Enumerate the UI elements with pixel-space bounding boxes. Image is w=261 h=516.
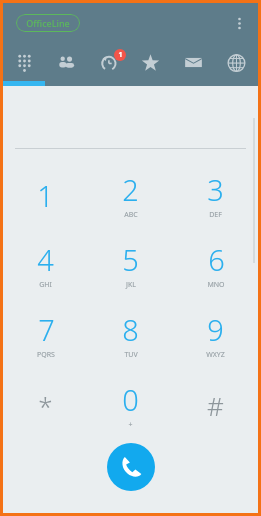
staticText: DEF [209, 210, 222, 220]
staticText: GHI [39, 280, 52, 290]
staticText: 0 [122, 380, 139, 419]
button[interactable]: Contacts [45, 43, 87, 81]
staticText: 6 [208, 240, 225, 279]
button[interactable]: 6 [173, 230, 258, 300]
staticText: OfficeLine [26, 17, 70, 29]
staticText: WXYZ [206, 350, 225, 360]
staticText: 1 [37, 176, 54, 215]
button[interactable]: 8 [88, 300, 173, 370]
button[interactable]: Dialpad [3, 43, 45, 81]
button[interactable]: Call [107, 443, 155, 491]
button[interactable]: 7 [3, 300, 88, 370]
staticText: TUV [124, 350, 138, 360]
button[interactable]: 2 [88, 160, 173, 230]
button[interactable]: OfficeLine [16, 14, 80, 32]
button[interactable]: Web [215, 43, 258, 81]
button[interactable]: 1 [3, 160, 88, 230]
staticText: # [207, 388, 224, 423]
staticText: ABC [124, 210, 138, 220]
staticText: 7 [38, 310, 55, 349]
staticText: 9 [207, 310, 224, 349]
staticText: + [128, 420, 133, 430]
staticText: 1 [118, 50, 123, 60]
staticText: 8 [122, 310, 139, 349]
staticText: PQRS [37, 350, 55, 360]
button[interactable]: 5 [88, 230, 173, 300]
staticText: 3 [207, 170, 224, 209]
button[interactable]: # [173, 370, 258, 440]
staticText: * [38, 388, 53, 423]
staticText: JKL [126, 280, 136, 290]
button[interactable]: * [3, 370, 88, 440]
staticText: 5 [122, 240, 139, 279]
button[interactable]: 9 [173, 300, 258, 370]
button[interactable]: 3 [173, 160, 258, 230]
button[interactable]: Favorites [129, 43, 172, 81]
button[interactable]: Messages [172, 43, 215, 81]
button[interactable]: More options [225, 9, 253, 37]
staticText: 4 [37, 240, 54, 279]
button[interactable]: 4 [3, 230, 88, 300]
staticText: MNO [207, 280, 225, 290]
staticText: 2 [122, 170, 139, 209]
button[interactable]: 0 [88, 370, 173, 440]
button[interactable]: Recents [87, 43, 129, 81]
